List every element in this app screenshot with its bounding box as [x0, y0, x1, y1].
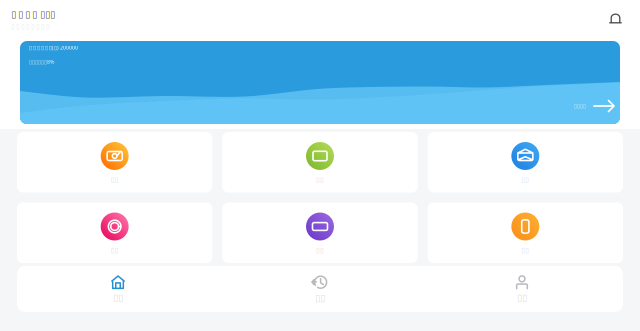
button[interactable]: ▯▯: [421, 266, 623, 312]
button[interactable]: ▯▯: [222, 202, 418, 263]
staticText: ▯▯: [316, 176, 324, 184]
button[interactable]: ▯▯: [428, 202, 623, 263]
staticText: ▯ ▯ ▯ ▯ ▯ ▯ ▯ ▯: [11, 23, 50, 30]
button[interactable]: ▯▯: [222, 132, 418, 192]
staticText: ▯▯: [517, 292, 527, 303]
staticText: ▯▯: [521, 176, 529, 184]
staticText: ▯▯: [111, 176, 119, 184]
staticText: ▯▯: [315, 293, 325, 303]
button[interactable]: ▯▯: [17, 266, 219, 312]
staticText: ▯▯▯▯▯▯8%: [29, 58, 54, 65]
staticText: ▯ ▯ ▯ ▯ ▯ ▯(▯) 200000: [29, 44, 78, 51]
button[interactable]: ▯▯: [219, 266, 421, 312]
staticText: ▯▯: [113, 292, 123, 303]
staticText: ▯▯: [111, 246, 119, 254]
button[interactable]: ▯ ▯ ▯ ▯ ▯ ▯(▯) 200000: [20, 41, 620, 124]
staticText: ▯▯: [316, 246, 324, 254]
button[interactable]: ▯▯: [428, 132, 623, 192]
button[interactable]: ▯▯: [17, 132, 212, 192]
staticText: ▯▯: [521, 246, 529, 254]
button[interactable]: ▯▯: [17, 202, 212, 263]
staticText: ▯ ▯ ▯ ▯ ▯▯▯: [11, 9, 55, 20]
staticText: ▯▯▯▯: [574, 103, 586, 109]
button[interactable]: Notifications: [605, 9, 626, 31]
